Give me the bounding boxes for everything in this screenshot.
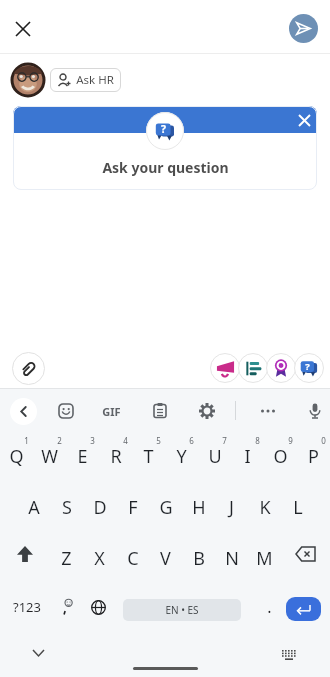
- button[interactable]: P: [297, 436, 330, 476]
- button[interactable]: N: [215, 538, 248, 578]
- button[interactable]: A: [17, 487, 50, 527]
- staticText: GIF: [102, 404, 121, 419]
- staticText: 9: [288, 435, 293, 446]
- staticText: Ask HR: [76, 72, 114, 88]
- button[interactable]: [52, 591, 82, 623]
- staticText: T: [143, 444, 154, 469]
- staticText: U: [208, 444, 222, 469]
- button[interactable]: [289, 538, 322, 570]
- staticText: ?123: [13, 598, 41, 616]
- button[interactable]: [83, 591, 113, 623]
- staticText: H: [192, 495, 206, 520]
- button[interactable]: [24, 643, 52, 663]
- button[interactable]: [238, 353, 268, 383]
- staticText: 6: [189, 435, 194, 446]
- button[interactable]: C: [116, 538, 149, 578]
- button[interactable]: R: [99, 436, 132, 476]
- button[interactable]: [266, 353, 296, 383]
- staticText: F: [128, 495, 138, 520]
- staticText: K: [259, 495, 271, 520]
- staticText: ?: [161, 122, 166, 136]
- button[interactable]: ?123: [8, 591, 46, 623]
- staticText: C: [127, 546, 139, 571]
- staticText: Q: [9, 444, 24, 469]
- staticText: R: [110, 444, 122, 469]
- staticText: E: [77, 444, 88, 469]
- button[interactable]: [10, 398, 37, 425]
- staticText: M: [256, 546, 273, 571]
- button[interactable]: Z: [50, 538, 83, 578]
- button[interactable]: F: [116, 487, 149, 527]
- button[interactable]: U: [198, 436, 231, 476]
- button[interactable]: [289, 14, 318, 43]
- staticText: G: [159, 495, 173, 520]
- button[interactable]: Y: [165, 436, 198, 476]
- staticText: Z: [61, 546, 72, 571]
- staticText: W: [41, 444, 58, 469]
- staticText: 5: [156, 435, 161, 446]
- staticText: S: [62, 495, 72, 520]
- staticText: 0: [321, 435, 326, 446]
- button[interactable]: O: [264, 436, 297, 476]
- button[interactable]: [210, 353, 240, 383]
- staticText: V: [160, 546, 171, 571]
- button[interactable]: D: [83, 487, 116, 527]
- staticText: 7: [222, 435, 227, 446]
- staticText: 1: [24, 435, 29, 446]
- button[interactable]: EN • ES: [123, 599, 241, 621]
- button[interactable]: [257, 400, 279, 422]
- button[interactable]: [9, 15, 37, 43]
- button[interactable]: [276, 646, 302, 664]
- staticText: 4: [123, 435, 128, 446]
- button[interactable]: [293, 109, 315, 131]
- button[interactable]: X: [83, 538, 116, 578]
- button[interactable]: [55, 400, 77, 422]
- staticText: O: [273, 444, 288, 469]
- button[interactable]: .: [256, 591, 282, 623]
- staticText: EN • ES: [165, 603, 199, 617]
- button[interactable]: S: [50, 487, 83, 527]
- button[interactable]: [12, 352, 45, 385]
- staticText: J: [229, 495, 234, 520]
- button[interactable]: H: [182, 487, 215, 527]
- button[interactable]: T: [132, 436, 165, 476]
- button[interactable]: L: [281, 487, 314, 527]
- staticText: I: [244, 444, 251, 469]
- button[interactable]: K: [248, 487, 281, 527]
- button[interactable]: [149, 400, 171, 422]
- button[interactable]: [286, 597, 321, 621]
- button[interactable]: B: [182, 538, 215, 578]
- staticText: N: [225, 546, 239, 571]
- button[interactable]: Q: [0, 436, 33, 476]
- staticText: .: [267, 596, 272, 618]
- button[interactable]: E: [66, 436, 99, 476]
- staticText: L: [293, 495, 303, 520]
- button[interactable]: [304, 400, 326, 422]
- button[interactable]: W: [33, 436, 66, 476]
- button[interactable]: [196, 400, 218, 422]
- staticText: 8: [255, 435, 260, 446]
- button[interactable]: [8, 538, 41, 570]
- button[interactable]: V: [149, 538, 182, 578]
- button[interactable]: ?: [294, 353, 324, 383]
- staticText: D: [93, 495, 107, 520]
- button[interactable]: M: [248, 538, 281, 578]
- staticText: X: [94, 546, 105, 571]
- staticText: B: [193, 546, 205, 571]
- staticText: Ask your question: [102, 158, 229, 177]
- button[interactable]: I: [231, 436, 264, 476]
- staticText: P: [308, 444, 319, 469]
- button[interactable]: Ask HR: [50, 68, 121, 92]
- button[interactable]: J: [215, 487, 248, 527]
- staticText: Y: [176, 444, 187, 469]
- button[interactable]: G: [149, 487, 182, 527]
- staticText: 3: [90, 435, 95, 446]
- staticText: A: [28, 495, 40, 520]
- staticText: 2: [57, 435, 62, 446]
- button[interactable]: GIF: [96, 400, 126, 422]
- staticText: ?: [305, 360, 310, 373]
